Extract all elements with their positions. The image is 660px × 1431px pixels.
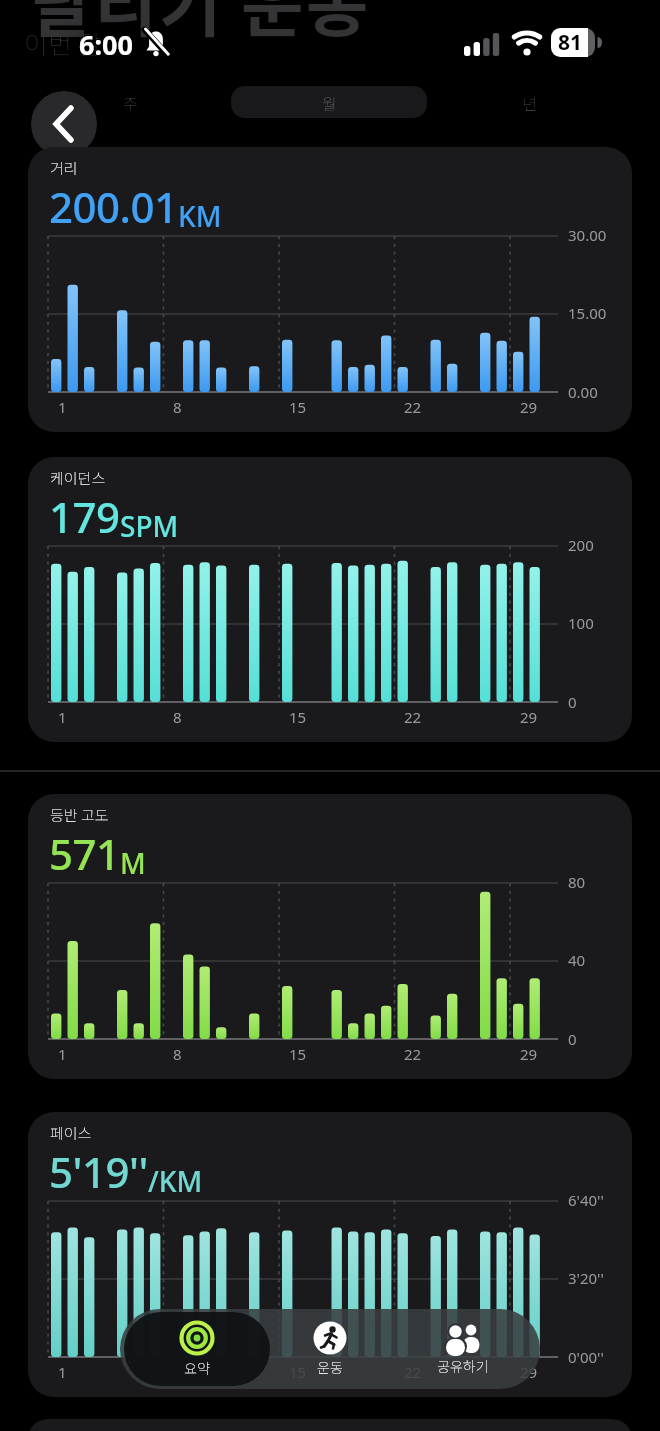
staticText: 22	[404, 397, 422, 417]
staticText: 29	[520, 397, 538, 417]
staticText: 1	[58, 1044, 67, 1064]
staticText: 15	[289, 1044, 307, 1064]
staticText: 22	[404, 707, 422, 727]
staticText: 200.01	[49, 178, 178, 235]
staticText: 운동	[317, 1357, 343, 1377]
staticText: 주	[123, 91, 138, 114]
staticText: 571	[49, 825, 120, 882]
button[interactable]: 주	[30, 86, 230, 118]
staticText: 1	[58, 397, 67, 417]
button[interactable]: 케이던스	[28, 457, 632, 742]
staticText: 1	[58, 707, 67, 727]
button[interactable]: 페이스	[28, 1112, 632, 1397]
staticText: 100	[568, 613, 594, 633]
staticText: 15	[289, 707, 307, 727]
staticText: KM	[178, 197, 222, 235]
staticText: 0'00''	[568, 1347, 604, 1367]
staticText: 15	[289, 1362, 307, 1382]
staticText: 5'19''	[49, 1143, 148, 1200]
staticText: 29	[520, 1362, 538, 1382]
staticText: 0.00	[568, 382, 598, 402]
staticText: 등반 고도	[50, 804, 109, 826]
staticText: /KM	[148, 1162, 203, 1200]
button[interactable]: 등반 고도	[28, 794, 632, 1079]
staticText: 거리	[50, 157, 78, 179]
staticText: 공유하기	[437, 1356, 489, 1376]
button[interactable]: 월	[230, 86, 428, 118]
staticText: 80	[568, 872, 586, 892]
staticText: 29	[520, 707, 538, 727]
staticText: 22	[404, 1044, 422, 1064]
staticText: 15.00	[568, 303, 607, 323]
staticText: 15	[289, 397, 307, 417]
staticText: 3'20''	[568, 1268, 604, 1288]
staticText: 8	[173, 1044, 182, 1064]
staticText: 40	[568, 950, 586, 970]
staticText: 페이스	[50, 1122, 92, 1144]
staticText: 이번 달	[24, 24, 102, 62]
staticText: 8	[173, 397, 182, 417]
staticText: 요약	[184, 1358, 210, 1378]
button[interactable]: 운동	[270, 1312, 390, 1386]
staticText: 6:00	[79, 26, 133, 63]
staticText: 0	[568, 1029, 577, 1049]
button[interactable]: 년	[428, 86, 630, 118]
button[interactable]	[31, 91, 97, 157]
staticText: 30.00	[568, 225, 607, 245]
button[interactable]: 요약	[124, 1312, 270, 1386]
button[interactable]: 공유하기	[390, 1312, 536, 1386]
staticText: 케이던스	[50, 467, 106, 489]
staticText: 0	[568, 692, 577, 712]
staticText: 22	[404, 1362, 422, 1382]
staticText: 29	[520, 1044, 538, 1064]
staticText: 179	[49, 488, 120, 545]
staticText: M	[120, 844, 146, 882]
staticText: 8	[173, 707, 182, 727]
staticText: 달리기 운동	[30, 0, 371, 50]
button[interactable]: 거리	[28, 147, 632, 432]
staticText: 월	[322, 91, 337, 114]
staticText: 200	[568, 535, 594, 555]
staticText: SPM	[120, 507, 179, 545]
staticText: 년	[522, 91, 537, 114]
staticText: 81	[558, 28, 583, 57]
staticText: 6'40''	[568, 1190, 604, 1210]
staticText: 1	[58, 1362, 67, 1382]
